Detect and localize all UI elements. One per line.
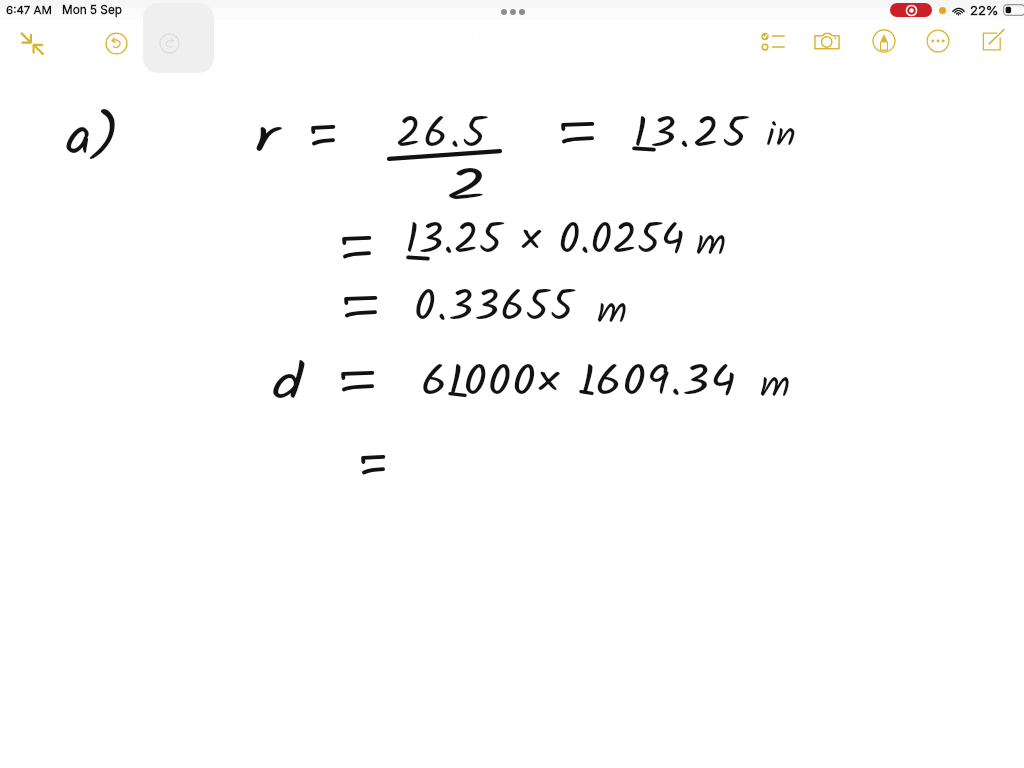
staticText: 6:47 AM — [6, 3, 52, 17]
staticText: 13.25 × 0.0254 — [405, 207, 685, 276]
button[interactable]: Redo — [143, 3, 214, 73]
button[interactable]: Markup — [867, 24, 901, 58]
button[interactable]: Camera — [810, 24, 844, 58]
button[interactable]: Compose — [976, 24, 1010, 58]
button[interactable]: Checklist — [755, 24, 789, 58]
staticText: 61000× 1609.34 — [421, 349, 737, 418]
staticText: 22% — [970, 2, 999, 18]
staticText: m — [597, 283, 628, 344]
staticText: a) — [66, 99, 120, 182]
staticText: 13.25 — [633, 101, 751, 170]
staticText: 26.5 — [396, 101, 489, 170]
staticText: m — [696, 215, 727, 276]
staticText: 2 — [446, 152, 489, 224]
staticText: m — [760, 357, 791, 418]
button[interactable]: Collapse — [12, 28, 52, 58]
staticText: d — [272, 348, 303, 425]
staticText: in — [766, 110, 798, 164]
button[interactable]: More — [921, 24, 955, 58]
staticText: 0.33655 — [414, 274, 575, 343]
button[interactable]: Undo — [98, 25, 134, 61]
staticText: Mon 5 Sep — [62, 3, 123, 17]
staticText: r — [254, 101, 279, 178]
